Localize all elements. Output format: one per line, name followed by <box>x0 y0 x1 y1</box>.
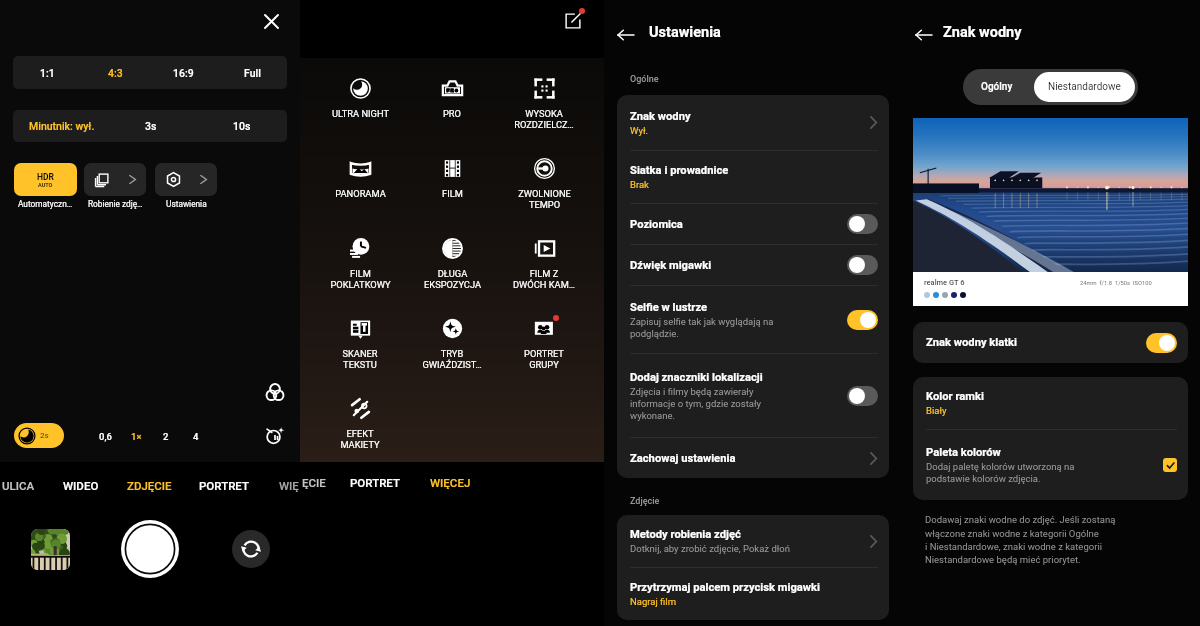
staticText: Niestandardowe <box>1048 81 1121 93</box>
staticText: Brak <box>630 179 649 190</box>
staticText: Zdjęcia i filmy będą zawierały informacj… <box>630 386 761 421</box>
button[interactable]: 3s <box>105 110 196 142</box>
button[interactable]: Ogólny <box>963 69 1031 105</box>
staticText: Paleta kolorów <box>926 446 1001 459</box>
button[interactable]: Off <box>847 255 878 275</box>
staticText: TRYB GWIAŹDZIST… <box>422 348 482 370</box>
button[interactable]: Siatka i prowadnice <box>617 151 889 203</box>
staticText: EFEKT MAKIETY <box>340 428 380 450</box>
button[interactable]: Niestandardowe <box>1034 72 1135 102</box>
button[interactable]: 16:9 <box>149 56 218 89</box>
button[interactable]: Dźwięk migawki <box>617 245 889 285</box>
button[interactable]: Gallery <box>31 529 70 570</box>
button[interactable]: WYSOKA ROZDZIELCZ… <box>498 70 590 150</box>
staticText: Znak wodny <box>630 110 691 123</box>
button[interactable]: ZWOLNIONE TEMPO <box>498 150 590 230</box>
button[interactable]: Metody robienia zdjęć <box>617 515 889 567</box>
staticText: FILM Z DWÓCH KAM… <box>513 268 575 290</box>
staticText: 10s <box>233 120 251 132</box>
staticText: Biały <box>926 405 947 416</box>
staticText: Ustawienia <box>649 24 721 41</box>
button[interactable]: Shutter <box>121 520 179 578</box>
button[interactable]: WIĘCEJ <box>426 473 475 492</box>
button[interactable]: PANORAMA <box>314 150 406 230</box>
staticText: 0,6 <box>99 431 112 442</box>
staticText: Siatka i prowadnice <box>630 164 729 177</box>
button[interactable]: 1× <box>121 423 151 449</box>
staticText: PORTRET GRUPY <box>524 348 564 370</box>
button[interactable]: 4:3 <box>81 56 149 89</box>
button[interactable]: On <box>1146 333 1177 353</box>
button[interactable]: 1:1 <box>13 56 81 89</box>
staticText: Znak wodny <box>943 24 1022 41</box>
button[interactable]: Przytrzymaj palcem przycisk migawki <box>617 568 889 620</box>
button[interactable]: FILM <box>406 150 498 230</box>
button[interactable]: 2s <box>14 423 64 448</box>
button[interactable]: FILM POKLATKOWY <box>314 230 406 310</box>
button[interactable]: 4 <box>181 423 211 449</box>
button[interactable]: TRYB GWIAŹDZIST… <box>406 310 498 390</box>
staticText: 1:1 <box>40 67 55 79</box>
button[interactable]: PORTRET <box>195 476 253 495</box>
button[interactable]: AI camera <box>264 425 286 447</box>
button[interactable]: Close <box>258 8 284 34</box>
staticText: Dodaj paletę kolorów utworzoną na podsta… <box>926 461 1075 484</box>
button[interactable]: Znak wodny klatki <box>913 322 1188 363</box>
staticText: Robienie zdję… <box>88 199 143 209</box>
staticText: 4 <box>193 431 199 442</box>
staticText: Selfie w lustrze <box>630 301 708 314</box>
button[interactable]: ĘCIE <box>298 473 330 492</box>
button[interactable]: EFEKT MAKIETY <box>314 390 406 462</box>
button[interactable]: 0,6 <box>90 423 121 449</box>
staticText: 16:9 <box>173 67 194 79</box>
button[interactable]: ZDJĘCIE <box>123 476 176 495</box>
button[interactable]: Paleta kolorów <box>913 430 1188 500</box>
staticText: Dodawaj znaki wodne do zdjęć. Jeśli zost… <box>925 514 1116 565</box>
button[interactable]: SKANER TEKSTU <box>314 310 406 390</box>
button[interactable]: Back <box>916 27 932 43</box>
staticText: ULICA <box>2 479 35 492</box>
button[interactable]: WIĘ <box>275 476 303 495</box>
staticText: Nagraj film <box>630 596 677 607</box>
staticText: Automatyczn… <box>18 199 73 209</box>
staticText: SKANER TEKSTU <box>342 348 378 370</box>
button[interactable]: Settings <box>155 163 217 196</box>
button[interactable]: PORTRET <box>346 473 404 492</box>
button[interactable]: WIDEO <box>59 476 103 495</box>
button[interactable]: 10s <box>196 110 287 142</box>
staticText: Wył. <box>630 125 648 136</box>
button[interactable]: Switch camera <box>232 530 270 568</box>
staticText: realme GT 6 <box>924 278 965 287</box>
button[interactable]: Back <box>618 27 634 43</box>
button[interactable]: Zachowaj ustawienia <box>617 438 889 478</box>
button[interactable]: PORTRET GRUPY <box>498 310 590 390</box>
button[interactable]: 2 <box>151 423 181 449</box>
button[interactable]: Dodaj znaczniki lokalizacji <box>617 354 889 437</box>
button[interactable]: Edit modes <box>560 8 586 34</box>
button[interactable]: Color filters <box>264 381 286 403</box>
button[interactable]: Kolor ramki <box>913 377 1188 429</box>
button[interactable]: Off <box>847 214 878 234</box>
button[interactable]: ULTRA NIGHT <box>314 70 406 150</box>
staticText: Przytrzymaj palcem przycisk migawki <box>630 581 820 594</box>
button[interactable]: Selfie w lustrze <box>617 286 889 353</box>
staticText: FILM POKLATKOWY <box>330 268 391 290</box>
staticText: FILM <box>442 188 463 199</box>
button[interactable]: Full <box>218 56 287 89</box>
staticText: WIDEO <box>63 479 99 492</box>
button[interactable]: Color palette enabled <box>1163 458 1177 472</box>
button[interactable]: DŁUGA EKSPOZYCJA <box>406 230 498 310</box>
button[interactable]: Znak wodny <box>617 95 889 150</box>
button[interactable]: Off <box>847 386 878 406</box>
button[interactable]: FILM Z DWÓCH KAM… <box>498 230 590 310</box>
button[interactable]: Poziomica <box>617 204 889 244</box>
button[interactable]: ULICA <box>0 476 39 495</box>
button[interactable]: Shooting method <box>84 163 146 196</box>
staticText: 3s <box>145 120 157 132</box>
button[interactable]: Minutnik: wył. <box>13 110 105 142</box>
staticText: Zdjęcie <box>630 496 660 507</box>
staticText: Ustawienia <box>166 199 207 209</box>
button[interactable]: HDR <box>14 163 77 196</box>
button[interactable]: PRO <box>406 70 498 150</box>
button[interactable]: On <box>847 310 878 330</box>
